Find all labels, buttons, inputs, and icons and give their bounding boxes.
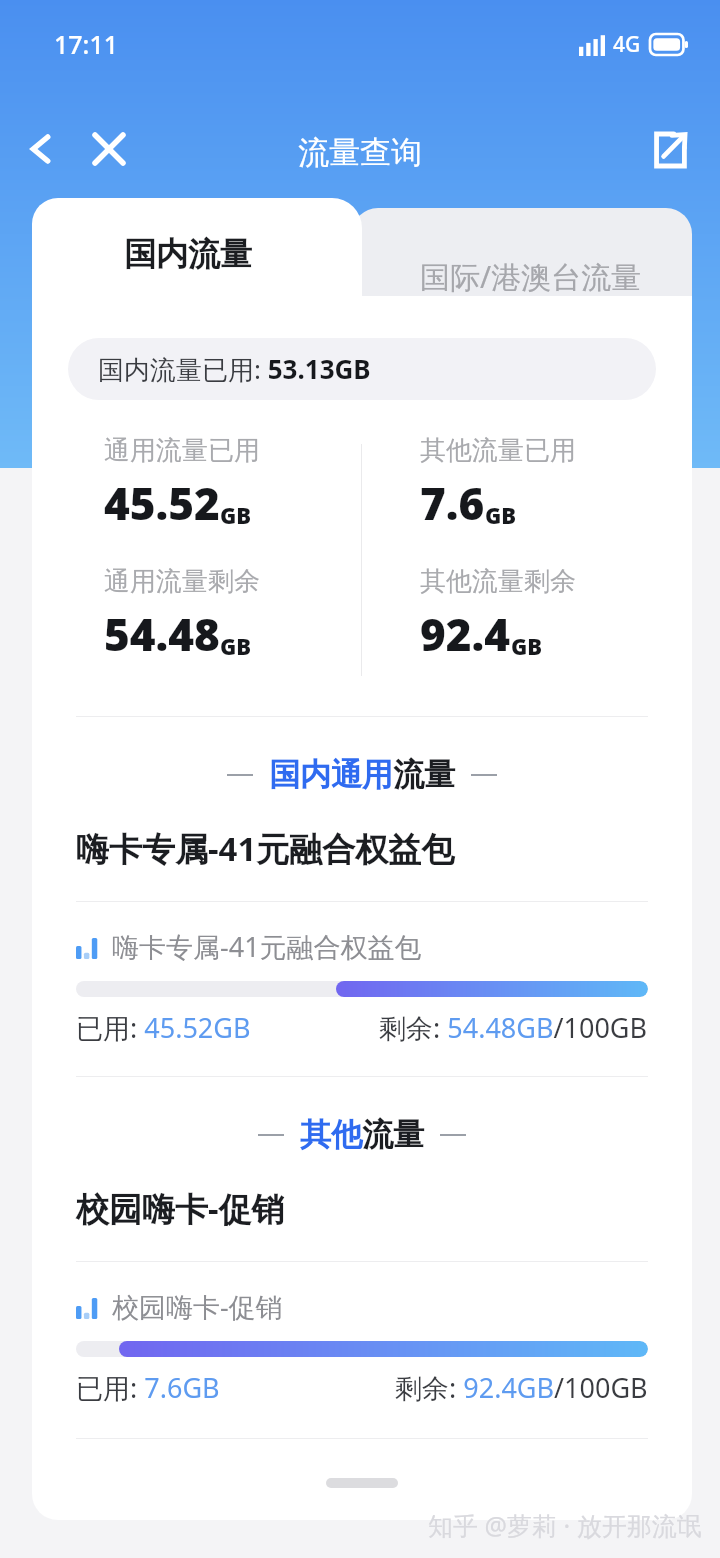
- staticText: 流量查询: [298, 133, 422, 172]
- button[interactable]: 嗨卡专属-41元融合权益包: [76, 928, 648, 1046]
- staticText: 国内流量: [124, 234, 252, 274]
- staticText: 知乎 @萝莉 · 放开那流氓: [428, 1508, 702, 1542]
- staticText: 国内流量已用: 53.13GB: [98, 351, 371, 387]
- staticText: 嗨卡专属-41元融合权益包: [112, 928, 422, 965]
- staticText: 校园嗨卡-促销: [112, 1288, 283, 1325]
- staticText: 已用: 45.52GB: [76, 1009, 251, 1046]
- staticText: GB: [511, 631, 543, 661]
- button[interactable]: 国际/港澳台流量: [352, 208, 692, 338]
- staticText: 92.4: [420, 604, 511, 664]
- button[interactable]: 校园嗨卡-促销: [76, 1288, 648, 1406]
- staticText: GB: [220, 631, 252, 661]
- button[interactable]: Share: [642, 122, 698, 178]
- button[interactable]: Close: [82, 122, 136, 176]
- staticText: 剩余: 54.48GB/100GB: [379, 1009, 648, 1046]
- staticText: 嗨卡专属-41元融合权益包: [76, 826, 455, 871]
- staticText: 4G: [613, 30, 641, 59]
- staticText: 已用: 7.6GB: [76, 1369, 220, 1406]
- staticText: 剩余: 92.4GB/100GB: [395, 1369, 648, 1406]
- staticText: 其他流量: [300, 1115, 424, 1154]
- staticText: 45.52: [104, 473, 220, 533]
- staticText: 17:11: [54, 27, 119, 61]
- staticText: 通用流量已用: [104, 434, 260, 467]
- staticText: 其他流量已用: [420, 434, 576, 467]
- button[interactable]: 国内流量已用: 53.13GB: [68, 338, 656, 400]
- staticText: 校园嗨卡-促销: [76, 1186, 285, 1231]
- button[interactable]: 国内流量: [32, 198, 362, 310]
- staticText: GB: [485, 500, 517, 530]
- staticText: 54.48: [104, 604, 220, 664]
- staticText: 国内通用流量: [269, 755, 455, 794]
- staticText: 其他流量剩余: [420, 565, 576, 598]
- staticText: 7.6: [420, 473, 485, 533]
- staticText: 通用流量剩余: [104, 565, 260, 598]
- staticText: 国际/港澳台流量: [420, 256, 642, 297]
- staticText: GB: [220, 500, 252, 530]
- button[interactable]: Back: [14, 122, 68, 176]
